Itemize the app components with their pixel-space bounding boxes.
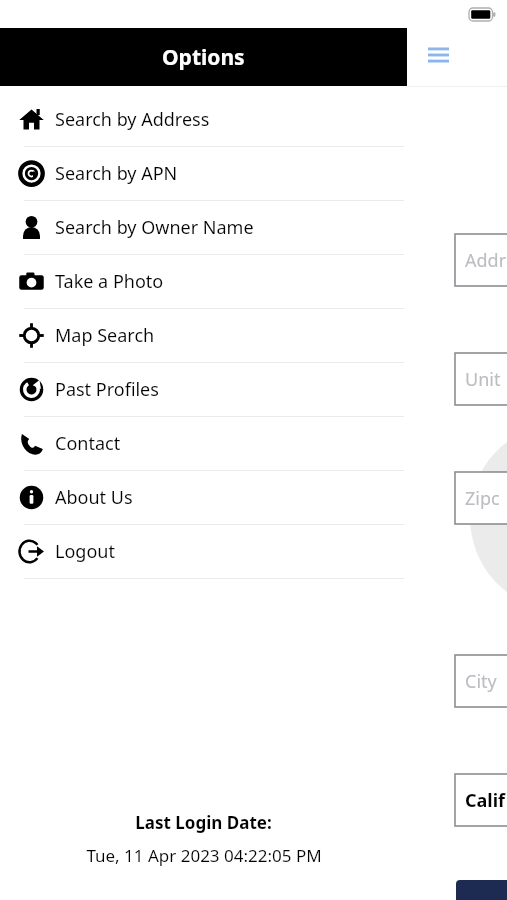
staticText: Last Login Date: <box>135 811 272 834</box>
button[interactable]: Search by APN <box>0 147 407 201</box>
button[interactable]: Contact <box>0 417 407 471</box>
button[interactable]: About Us <box>0 471 407 525</box>
staticText: Addr <box>465 248 507 273</box>
button[interactable]: City <box>455 655 507 707</box>
button[interactable] <box>456 880 507 900</box>
staticText: Map Search <box>55 323 155 348</box>
staticText: Contact <box>55 431 121 456</box>
button[interactable]: Search by Owner Name <box>0 201 407 255</box>
staticText: Logout <box>55 539 115 564</box>
button[interactable]: Logout <box>0 525 407 579</box>
button[interactable]: Calif <box>455 774 507 826</box>
staticText: Search by APN <box>55 161 178 186</box>
staticText: Unit <box>465 367 501 392</box>
button[interactable]: Search by Address <box>0 93 407 147</box>
staticText: Take a Photo <box>55 269 164 294</box>
button[interactable]: Addr <box>455 234 507 286</box>
staticText: Zipc <box>465 486 500 511</box>
staticText: Search by Owner Name <box>55 215 254 240</box>
button[interactable]: Past Profiles <box>0 363 407 417</box>
staticText: Tue, 11 Apr 2023 04:22:05 PM <box>86 844 322 867</box>
button[interactable]: Zipc <box>455 472 507 524</box>
staticText: Past Profiles <box>55 377 159 402</box>
staticText: About Us <box>55 485 133 510</box>
staticText: Search by Address <box>55 107 210 132</box>
staticText: Calif <box>465 788 506 813</box>
button[interactable]: Map Search <box>0 309 407 363</box>
staticText: Options <box>162 43 245 72</box>
button[interactable]: Open navigation menu <box>418 35 458 75</box>
staticText: City <box>465 669 497 694</box>
button[interactable]: Take a Photo <box>0 255 407 309</box>
button[interactable]: Unit <box>455 353 507 405</box>
